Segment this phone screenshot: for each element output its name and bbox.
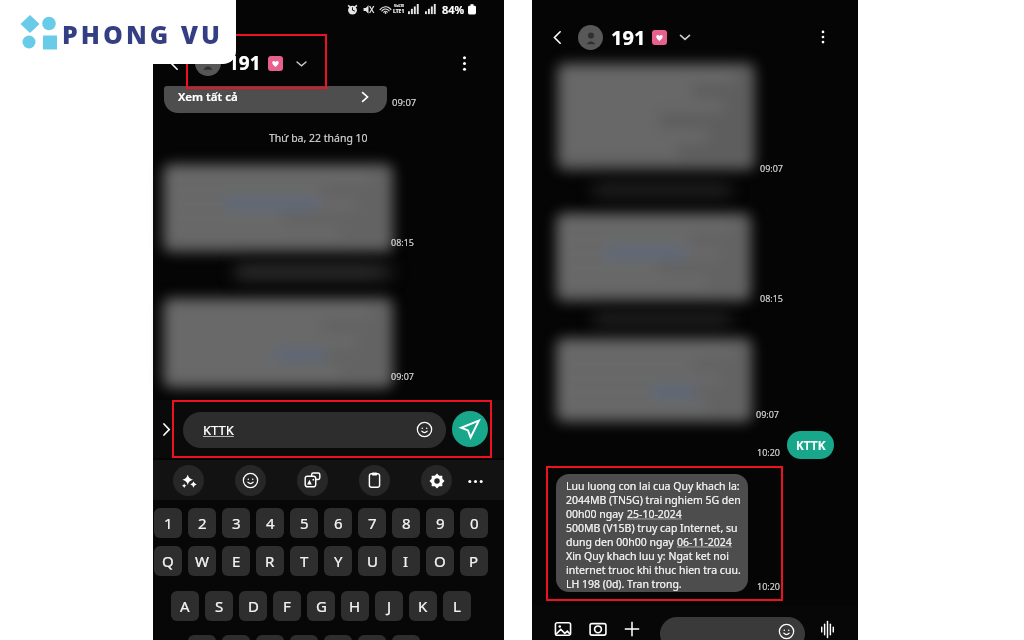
- button[interactable]: 8: [392, 508, 420, 538]
- staticText: H: [349, 596, 361, 616]
- staticText: W: [195, 551, 209, 571]
- button[interactable]: E: [222, 546, 250, 576]
- staticText: Xin Quy khach luu y: Ngat ket noi: [566, 549, 729, 563]
- button[interactable]: 4: [256, 508, 284, 538]
- button[interactable]: 5: [290, 508, 318, 538]
- staticText: 2: [198, 513, 207, 533]
- staticText: 5: [300, 513, 309, 533]
- button[interactable]: W: [188, 546, 216, 576]
- button[interactable]: Back: [548, 21, 693, 53]
- button[interactable]: V: [290, 635, 318, 640]
- button[interactable]: 1: [154, 508, 182, 538]
- staticText: U: [367, 551, 378, 571]
- button[interactable]: Camera: [588, 619, 608, 639]
- button[interactable]: A: [171, 591, 199, 621]
- button[interactable]: 0: [460, 508, 488, 538]
- staticText: 6: [334, 513, 343, 533]
- button[interactable]: 9: [426, 508, 454, 538]
- button[interactable]: More options: [808, 22, 838, 52]
- button[interactable]: X: [222, 635, 250, 640]
- staticText: 09:07: [756, 408, 780, 420]
- staticText: Thứ ba, 22 tháng 10: [269, 131, 368, 145]
- other: Back: [165, 54, 184, 73]
- button[interactable]: N: [358, 635, 386, 640]
- staticText: 00h00 ngay: [566, 507, 627, 521]
- button[interactable]: Settings: [421, 465, 452, 496]
- button[interactable]: Xem tất cả: [164, 86, 387, 113]
- staticText: Y: [334, 551, 343, 571]
- staticText: E: [232, 551, 241, 571]
- staticText: S: [215, 596, 224, 616]
- staticText: LTE1: [393, 8, 405, 15]
- button[interactable]: Voice input: [818, 620, 836, 638]
- staticText: 3: [232, 513, 241, 533]
- button[interactable]: Clipboard: [359, 465, 390, 496]
- button[interactable]: Send: [452, 411, 488, 447]
- button[interactable]: More options: [451, 50, 477, 76]
- staticText: J: [387, 596, 392, 616]
- staticText: L: [453, 596, 461, 616]
- button[interactable]: KTTK: [183, 412, 446, 448]
- button[interactable]: R: [256, 546, 284, 576]
- button[interactable]: B: [324, 635, 352, 640]
- staticText: P: [469, 551, 479, 571]
- button[interactable]: K: [409, 591, 437, 621]
- button[interactable]: Q: [154, 546, 182, 576]
- staticText: 7: [368, 513, 377, 533]
- staticText: VoLTE: [394, 3, 405, 8]
- button[interactable]: Emoji: [235, 465, 266, 496]
- staticText: 191: [611, 24, 646, 51]
- button[interactable]: 3: [222, 508, 250, 538]
- staticText: 8: [402, 513, 411, 533]
- button[interactable]: J: [375, 591, 403, 621]
- staticText: internet truoc khi thuc hien tra cuu.: [566, 563, 741, 577]
- button[interactable]: I: [392, 546, 420, 576]
- button[interactable]: G: [307, 591, 335, 621]
- staticText: K: [418, 596, 428, 616]
- button[interactable]: S: [205, 591, 233, 621]
- staticText: 9: [436, 513, 445, 533]
- staticText: 08:15: [760, 292, 784, 304]
- button[interactable]: T: [290, 546, 318, 576]
- button[interactable]: Expand toolbar: [158, 421, 174, 437]
- staticText: R: [265, 551, 275, 571]
- staticText: G: [316, 596, 327, 616]
- button[interactable]: Suggestions: [173, 465, 204, 496]
- button[interactable]: O: [426, 546, 454, 576]
- staticText: 08:15: [391, 236, 415, 248]
- staticText: KTTK: [203, 421, 234, 439]
- staticText: 09:07: [391, 370, 415, 382]
- button[interactable]: 7: [358, 508, 386, 538]
- button[interactable]: More: [462, 468, 488, 494]
- staticText: Xem tất cả: [178, 89, 238, 105]
- staticText: Q: [162, 551, 174, 571]
- button[interactable]: [660, 617, 805, 640]
- button[interactable]: U: [358, 546, 386, 576]
- button[interactable]: KTTK: [787, 431, 834, 459]
- button[interactable]: Back: [165, 48, 309, 78]
- button[interactable]: Z: [188, 635, 216, 640]
- button[interactable]: Y: [324, 546, 352, 576]
- staticText: 10:20: [757, 446, 781, 458]
- button[interactable]: Add: [622, 619, 642, 639]
- staticText: dung den 00h00 ngay: [566, 535, 677, 549]
- button[interactable]: 6: [324, 508, 352, 538]
- button[interactable]: 2: [188, 508, 216, 538]
- staticText: 4: [266, 513, 275, 533]
- button[interactable]: C: [256, 635, 284, 640]
- button[interactable]: Luu luong con lai cua Quy khach la:: [556, 474, 748, 592]
- staticText: KTTK: [796, 437, 826, 453]
- button[interactable]: Gallery: [553, 619, 573, 639]
- staticText: 25-10-2024: [627, 507, 682, 521]
- button[interactable]: D: [239, 591, 267, 621]
- button[interactable]: Stickers: [297, 465, 328, 496]
- staticText: 2044MB (TN5G) trai nghiem 5G den: [566, 493, 741, 507]
- button[interactable]: M: [392, 635, 420, 640]
- button[interactable]: L: [443, 591, 471, 621]
- staticText: 191: [228, 50, 261, 76]
- staticText: O: [434, 551, 446, 571]
- staticText: 10:20: [757, 580, 781, 592]
- button[interactable]: P: [460, 546, 488, 576]
- button[interactable]: F: [273, 591, 301, 621]
- button[interactable]: H: [341, 591, 369, 621]
